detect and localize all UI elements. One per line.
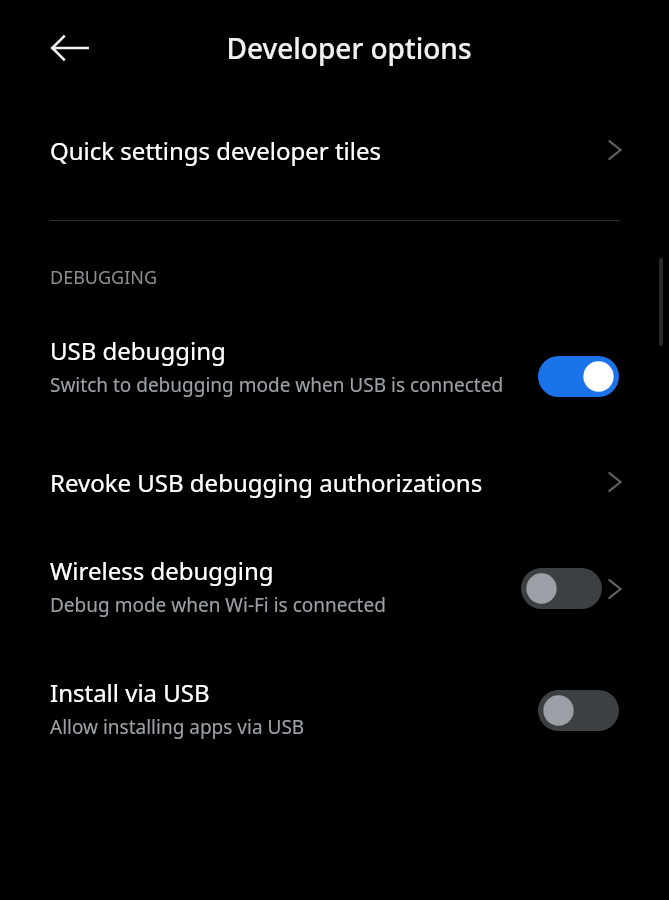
staticText: Switch to debugging mode when USB is con…: [50, 372, 504, 398]
staticText: Wireless debugging: [50, 554, 274, 587]
button[interactable]: Toggle off: [521, 568, 602, 609]
button[interactable]: Back: [36, 14, 104, 82]
button[interactable]: Toggle on: [538, 356, 619, 397]
staticText: Debug mode when Wi-Fi is connected: [50, 592, 386, 618]
staticText: Install via USB: [50, 676, 210, 709]
button[interactable]: Revoke USB debugging authorizations: [0, 450, 669, 514]
staticText: DEBUGGING: [50, 265, 158, 290]
button[interactable]: Toggle off: [538, 690, 619, 731]
staticText: USB debugging: [50, 334, 226, 367]
button[interactable]: USB debugging: [0, 334, 669, 398]
staticText: Quick settings developer tiles: [50, 134, 382, 167]
button[interactable]: Quick settings developer tiles: [0, 96, 669, 204]
button[interactable]: Wireless debugging: [0, 554, 669, 618]
button[interactable]: Install via USB: [0, 676, 669, 740]
staticText: Revoke USB debugging authorizations: [50, 466, 483, 499]
staticText: Allow installing apps via USB: [50, 714, 305, 740]
staticText: Developer options: [226, 29, 472, 67]
